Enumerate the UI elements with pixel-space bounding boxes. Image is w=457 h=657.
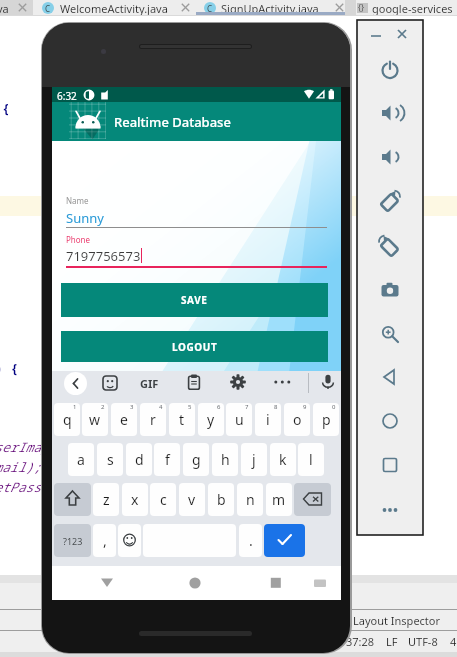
staticText: p xyxy=(322,410,331,429)
button[interactable]: s xyxy=(97,443,123,476)
button[interactable]: y xyxy=(198,403,224,436)
button[interactable]: Enter xyxy=(264,524,305,557)
button[interactable]: Backspace xyxy=(294,483,331,516)
button[interactable]: b xyxy=(208,483,234,516)
button[interactable]: a xyxy=(68,443,94,476)
button[interactable]: g xyxy=(183,443,209,476)
button[interactable]: h xyxy=(212,443,238,476)
staticText: 37:28 xyxy=(346,634,375,649)
button[interactable]: LOGOUT xyxy=(61,331,328,362)
button[interactable]: t xyxy=(169,403,195,436)
button[interactable]: i xyxy=(255,403,281,436)
staticText: Sunny xyxy=(66,209,104,227)
staticText: h xyxy=(221,450,230,469)
staticText: l xyxy=(309,450,313,469)
button[interactable]: w xyxy=(82,403,108,436)
staticText: 1 xyxy=(73,403,77,411)
button[interactable]: f xyxy=(154,443,180,476)
staticText: va xyxy=(0,1,9,16)
button[interactable]: e xyxy=(111,403,137,436)
button[interactable]: ?123 xyxy=(54,524,91,557)
staticText: UTF-8 xyxy=(408,634,438,649)
button[interactable]: Screenshot xyxy=(380,280,400,300)
button[interactable]: Close tab xyxy=(335,3,344,12)
staticText: d xyxy=(135,450,144,469)
button[interactable]: Close xyxy=(397,29,407,39)
button[interactable]: k xyxy=(270,443,296,476)
staticText: 9 xyxy=(303,403,307,411)
staticText: s xyxy=(107,450,114,469)
staticText: r xyxy=(150,410,156,429)
button[interactable]: More xyxy=(380,500,400,520)
button[interactable]: GIF xyxy=(140,376,159,391)
button[interactable]: r xyxy=(140,403,166,436)
button[interactable]: Zoom xyxy=(380,324,400,344)
staticText: 7197756573 xyxy=(66,247,141,265)
button[interactable]: Close tab xyxy=(18,3,27,12)
button[interactable]: Rotate right xyxy=(380,191,400,211)
staticText: Layout Inspector xyxy=(353,613,441,628)
staticText: i xyxy=(266,410,270,429)
button[interactable]: p xyxy=(313,403,339,436)
button[interactable]: Collapse toolbar xyxy=(64,372,87,395)
staticText: 2 xyxy=(101,403,105,411)
button[interactable]: . xyxy=(239,524,262,557)
staticText: u xyxy=(235,410,244,429)
button[interactable]: n xyxy=(237,483,263,516)
button[interactable]: z xyxy=(93,483,119,516)
staticText: m xyxy=(272,490,286,509)
button[interactable]: v xyxy=(179,483,205,516)
staticText: Name xyxy=(66,195,89,206)
staticText: f xyxy=(165,450,170,469)
button[interactable]: Home xyxy=(189,577,201,589)
staticText: Phone xyxy=(66,234,91,245)
button[interactable]: d xyxy=(126,443,152,476)
button[interactable]: Voice input xyxy=(320,374,336,390)
button[interactable]: Back xyxy=(380,367,400,387)
button[interactable]: Switch keyboard xyxy=(314,578,326,590)
staticText: y xyxy=(207,410,215,429)
button[interactable]: Close tab xyxy=(181,3,190,12)
staticText: LOGOUT xyxy=(172,340,218,354)
button[interactable]: Power xyxy=(380,60,400,80)
button[interactable]: j xyxy=(241,443,267,476)
button[interactable]: q xyxy=(54,403,80,436)
staticText: 4 xyxy=(159,403,163,411)
button[interactable]: u xyxy=(226,403,252,436)
button[interactable]: , xyxy=(93,524,116,557)
staticText: x xyxy=(131,490,139,509)
staticText: w xyxy=(89,410,101,429)
button[interactable]: m xyxy=(266,483,292,516)
staticText: n xyxy=(246,490,255,509)
button[interactable]: x xyxy=(122,483,148,516)
staticText: 5 xyxy=(188,403,192,411)
button[interactable]: More options xyxy=(274,380,290,396)
button[interactable]: Shift xyxy=(54,483,91,516)
staticText: mail); xyxy=(0,458,41,476)
button[interactable]: c xyxy=(150,483,176,516)
button[interactable]: Rotate left xyxy=(380,236,400,256)
button[interactable]: Back xyxy=(101,577,113,589)
button[interactable]: SAVE xyxy=(61,283,328,317)
button[interactable]: Stickers xyxy=(102,375,118,391)
button[interactable]: Overview xyxy=(380,455,400,475)
button[interactable]: Overview xyxy=(270,577,282,589)
button[interactable] xyxy=(0,0,33,15)
button[interactable]: Home xyxy=(380,411,400,431)
button[interactable]: Emoji xyxy=(118,524,141,557)
staticText: t xyxy=(179,410,185,429)
button[interactable]: Clipboard xyxy=(186,374,202,390)
button[interactable]: Layout Inspector xyxy=(0,610,457,630)
staticText: k xyxy=(279,450,287,469)
button[interactable]: l xyxy=(298,443,324,476)
button[interactable]: o xyxy=(284,403,310,436)
button[interactable]: Volume down xyxy=(380,147,400,167)
button[interactable]: Settings xyxy=(230,374,246,390)
staticText: z xyxy=(103,490,110,509)
button[interactable]: Minimise xyxy=(371,31,381,41)
staticText: C xyxy=(45,3,51,14)
staticText: serImag xyxy=(0,438,49,456)
button[interactable]: Volume up xyxy=(380,103,400,123)
staticText: WelcomeActivity.java xyxy=(60,1,168,16)
